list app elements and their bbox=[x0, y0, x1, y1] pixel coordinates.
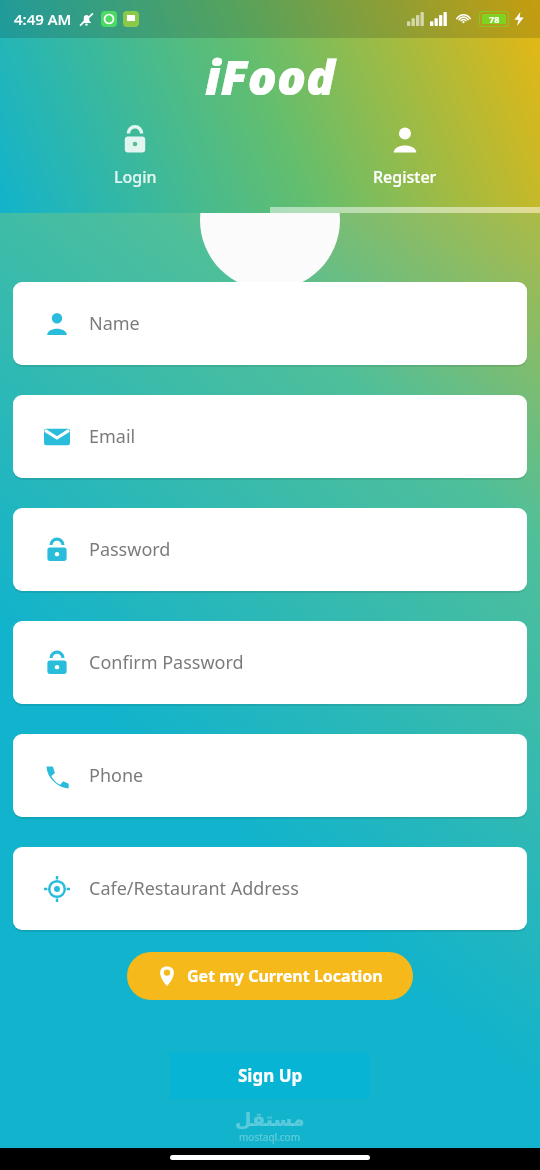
button[interactable]: Sign Up bbox=[170, 1052, 370, 1099]
staticText: Login bbox=[114, 166, 157, 188]
staticText: Name bbox=[89, 311, 140, 336]
button[interactable]: Login bbox=[0, 123, 270, 190]
staticText: mostaql.com bbox=[239, 1130, 301, 1144]
button[interactable]: Phone bbox=[13, 734, 527, 817]
button[interactable]: Cafe/Restaurant Address bbox=[13, 847, 527, 930]
staticText: 78 bbox=[489, 13, 500, 25]
button[interactable]: Register bbox=[270, 123, 540, 190]
button[interactable]: Password bbox=[13, 508, 527, 591]
staticText: Password bbox=[89, 537, 171, 562]
staticText: 4:49 AM bbox=[14, 9, 72, 29]
staticText: Sign Up bbox=[238, 1064, 303, 1087]
button[interactable]: Confirm Password bbox=[13, 621, 527, 704]
staticText: iFood bbox=[0, 44, 540, 109]
staticText: Phone bbox=[89, 763, 144, 788]
button[interactable]: Get my Current Location bbox=[127, 952, 413, 1000]
staticText: Register bbox=[373, 166, 437, 188]
staticText: Confirm Password bbox=[89, 650, 244, 675]
staticText: Cafe/Restaurant Address bbox=[89, 876, 299, 901]
button[interactable]: Name bbox=[13, 282, 527, 365]
staticText: Get my Current Location bbox=[187, 965, 383, 987]
staticText: Email bbox=[89, 424, 136, 449]
button[interactable]: Email bbox=[13, 395, 527, 478]
staticText: مستقل bbox=[235, 1108, 305, 1130]
